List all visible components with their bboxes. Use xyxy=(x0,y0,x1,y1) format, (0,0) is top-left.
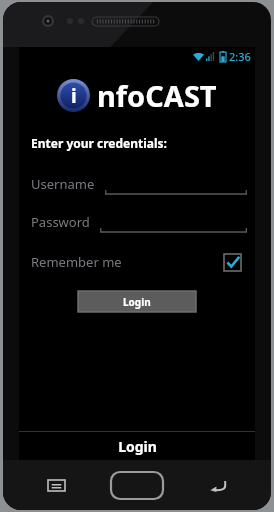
button[interactable]: Back xyxy=(205,472,231,498)
staticText: 2:36 xyxy=(229,49,251,64)
button[interactable]: Remember me xyxy=(31,253,241,271)
staticText: i xyxy=(71,83,77,109)
staticText: Password xyxy=(31,213,90,231)
staticText: Enter your credentials: xyxy=(31,135,167,151)
button[interactable]: Home xyxy=(111,472,163,499)
staticText: Remember me xyxy=(31,253,122,271)
staticText: Login xyxy=(118,437,157,456)
button[interactable]: Login xyxy=(78,291,196,312)
button[interactable]: Username xyxy=(31,173,247,195)
staticText: nfoCAST xyxy=(97,76,217,115)
button[interactable]: Login xyxy=(19,432,255,460)
staticText: Login xyxy=(123,295,151,309)
staticText: Username xyxy=(31,175,95,193)
button[interactable]: Menu xyxy=(43,472,69,498)
button[interactable]: Password xyxy=(31,211,247,233)
